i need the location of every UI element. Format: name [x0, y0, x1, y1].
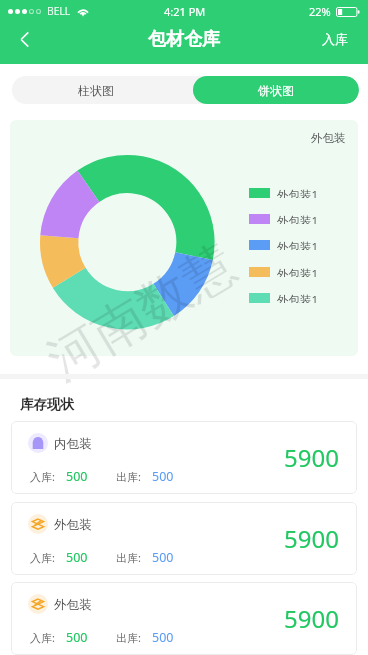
staticText: 饼状图 — [258, 83, 294, 98]
staticText: 500 — [66, 468, 88, 484]
staticText: 入库: — [30, 550, 55, 565]
staticText: 500 — [66, 549, 88, 565]
staticText: 库存现状 — [20, 396, 74, 413]
button[interactable]: 外包装 — [11, 582, 357, 655]
staticText: 外包装 — [54, 597, 92, 613]
staticText: 外包装1 — [277, 239, 319, 250]
staticText: 500 — [152, 549, 174, 565]
staticText: 出库: — [116, 550, 141, 565]
staticText: 外包装1 — [277, 213, 319, 224]
staticText: 500 — [152, 468, 174, 484]
staticText: 5900 — [284, 602, 339, 635]
staticText: 入库: — [30, 469, 55, 484]
staticText: 出库: — [116, 469, 141, 484]
staticText: 出库: — [116, 630, 141, 645]
staticText: 河南数慧 — [36, 231, 248, 390]
staticText: BELL — [47, 4, 71, 18]
button[interactable]: 入库 — [316, 27, 354, 53]
staticText: 外包装 — [54, 517, 92, 533]
staticText: 500 — [66, 629, 88, 645]
button[interactable]: Back — [6, 24, 38, 56]
staticText: 5900 — [284, 522, 339, 555]
staticText: 入库: — [30, 630, 55, 645]
staticText: 22% — [309, 4, 331, 19]
staticText: 外包装 — [311, 131, 346, 145]
staticText: 500 — [152, 629, 174, 645]
staticText: 5900 — [284, 441, 339, 474]
staticText: 外包装1 — [277, 187, 319, 198]
staticText: 外包装1 — [277, 266, 319, 277]
button[interactable]: 柱状图 — [12, 76, 180, 104]
staticText: 外包装1 — [277, 292, 319, 303]
staticText: 入库 — [322, 31, 348, 47]
staticText: 包材仓库 — [148, 28, 220, 51]
staticText: 内包装 — [54, 436, 92, 452]
button[interactable]: 外包装 — [11, 502, 357, 575]
button[interactable]: 内包装 — [11, 421, 357, 494]
staticText: 4:21 PM — [164, 4, 206, 19]
button[interactable]: 饼状图 — [193, 76, 359, 104]
staticText: 柱状图 — [78, 83, 114, 98]
